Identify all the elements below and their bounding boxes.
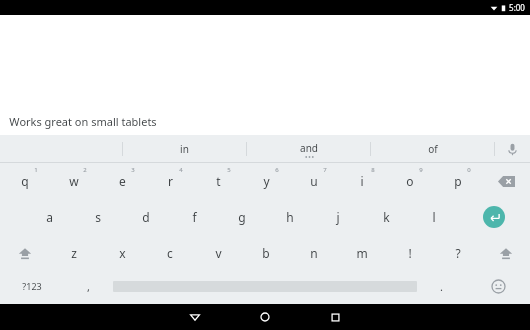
- button[interactable]: b: [242, 235, 290, 271]
- staticText: l: [432, 209, 436, 225]
- button[interactable]: Backspace: [482, 163, 530, 199]
- button[interactable]: u: [290, 163, 338, 199]
- staticText: c: [167, 245, 173, 261]
- staticText: h: [286, 209, 294, 225]
- staticText: d: [142, 209, 150, 225]
- staticText: f: [192, 209, 197, 225]
- button[interactable]: ?123: [0, 271, 64, 301]
- staticText: s: [95, 209, 101, 225]
- button[interactable]: j: [314, 199, 362, 235]
- button[interactable]: o: [386, 163, 434, 199]
- staticText: Works great on small tablets: [9, 114, 157, 129]
- staticText: 9: [419, 166, 423, 174]
- staticText: x: [119, 245, 126, 261]
- button[interactable]: y: [242, 163, 290, 199]
- button[interactable]: z: [49, 235, 98, 271]
- staticText: o: [406, 173, 414, 189]
- button[interactable]: w: [49, 163, 98, 199]
- button[interactable]: of: [371, 135, 494, 163]
- staticText: p: [454, 173, 462, 189]
- button[interactable]: Emoji: [466, 271, 530, 301]
- button[interactable]: q: [0, 163, 49, 199]
- staticText: in: [180, 142, 189, 156]
- staticText: .: [440, 279, 443, 294]
- staticText: and: [300, 141, 318, 155]
- button[interactable]: a: [25, 199, 74, 235]
- button[interactable]: i: [338, 163, 386, 199]
- staticText: 2: [83, 166, 87, 174]
- staticText: a: [46, 209, 53, 225]
- button[interactable]: in: [123, 135, 246, 163]
- staticText: !: [408, 245, 412, 261]
- staticText: 4: [179, 166, 183, 174]
- button[interactable]: m: [338, 235, 386, 271]
- staticText: ?: [455, 245, 461, 261]
- staticText: u: [310, 173, 318, 189]
- staticText: r: [168, 173, 173, 189]
- button[interactable]: x: [98, 235, 146, 271]
- button[interactable]: v: [194, 235, 242, 271]
- button[interactable]: Recents: [300, 304, 370, 330]
- staticText: t: [216, 173, 221, 189]
- staticText: 6: [275, 166, 279, 174]
- button[interactable]: p: [434, 163, 482, 199]
- button[interactable]: r: [146, 163, 194, 199]
- staticText: 7: [323, 166, 327, 174]
- staticText: 0: [467, 166, 471, 174]
- staticText: e: [119, 173, 126, 189]
- staticText: of: [428, 142, 438, 156]
- staticText: 3: [131, 166, 135, 174]
- button[interactable]: [0, 135, 122, 163]
- staticText: 5:00: [509, 2, 525, 13]
- button[interactable]: ?: [434, 235, 482, 271]
- button[interactable]: Shift: [482, 235, 530, 271]
- button[interactable]: c: [146, 235, 194, 271]
- button[interactable]: k: [362, 199, 410, 235]
- staticText: m: [356, 245, 368, 261]
- button[interactable]: n: [290, 235, 338, 271]
- staticText: v: [215, 245, 222, 261]
- button[interactable]: .: [417, 271, 466, 301]
- button[interactable]: Voice input: [495, 135, 530, 163]
- button[interactable]: s: [74, 199, 122, 235]
- button[interactable]: h: [266, 199, 314, 235]
- button[interactable]: Home: [230, 304, 300, 330]
- staticText: ?123: [22, 280, 42, 292]
- button[interactable]: and: [247, 135, 370, 163]
- button[interactable]: t: [194, 163, 242, 199]
- staticText: z: [71, 245, 77, 261]
- button[interactable]: d: [122, 199, 170, 235]
- staticText: 5: [227, 166, 231, 174]
- staticText: k: [383, 209, 390, 225]
- staticText: q: [21, 173, 29, 189]
- button[interactable]: Enter: [458, 199, 530, 235]
- button[interactable]: !: [386, 235, 434, 271]
- button[interactable]: l: [410, 199, 458, 235]
- button[interactable]: Space: [113, 271, 417, 301]
- staticText: i: [360, 173, 364, 189]
- staticText: 8: [371, 166, 375, 174]
- staticText: ,: [87, 279, 90, 294]
- staticText: 1: [34, 166, 38, 174]
- staticText: b: [262, 245, 270, 261]
- button[interactable]: Back: [160, 304, 230, 330]
- button[interactable]: g: [218, 199, 266, 235]
- button[interactable]: e: [98, 163, 146, 199]
- staticText: n: [310, 245, 318, 261]
- button[interactable]: Shift: [0, 235, 49, 271]
- staticText: w: [69, 173, 79, 189]
- staticText: j: [336, 209, 340, 225]
- staticText: g: [238, 209, 246, 225]
- button[interactable]: ,: [64, 271, 113, 301]
- button[interactable]: f: [170, 199, 218, 235]
- staticText: y: [263, 173, 270, 189]
